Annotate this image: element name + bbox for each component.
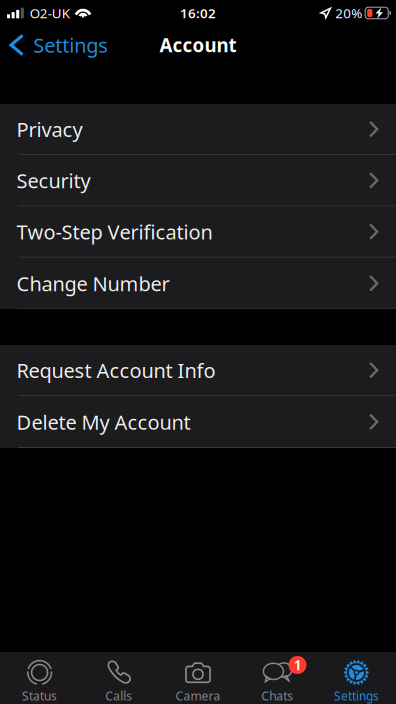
staticText: Two-Step Verification bbox=[16, 218, 212, 245]
button[interactable]: Calls bbox=[79, 652, 158, 704]
button[interactable]: Settings bbox=[317, 652, 396, 704]
button[interactable]: Camera bbox=[158, 652, 238, 704]
button[interactable]: Change Number bbox=[0, 258, 396, 309]
button[interactable]: Settings bbox=[0, 26, 116, 64]
staticText: Request Account Info bbox=[16, 357, 215, 383]
staticText: Change Number bbox=[16, 270, 169, 297]
button[interactable]: Two-Step Verification bbox=[0, 206, 396, 258]
staticText: Chats bbox=[261, 688, 293, 704]
staticText: Camera bbox=[175, 688, 220, 704]
staticText: Account bbox=[159, 33, 236, 57]
staticText: O2-UK bbox=[30, 4, 70, 22]
staticText: Status bbox=[22, 688, 57, 704]
staticText: Calls bbox=[105, 688, 132, 704]
staticText: Delete My Account bbox=[16, 409, 190, 435]
staticText: Settings bbox=[33, 32, 108, 58]
button[interactable]: Request Account Info bbox=[0, 345, 396, 396]
staticText: 1 bbox=[293, 655, 301, 674]
button[interactable]: Delete My Account bbox=[0, 396, 396, 447]
button[interactable]: Privacy bbox=[0, 104, 396, 155]
button[interactable]: Security bbox=[0, 155, 396, 206]
staticText: Settings bbox=[334, 688, 379, 704]
staticText: Privacy bbox=[16, 116, 82, 142]
button[interactable]: Status bbox=[0, 652, 79, 704]
button[interactable]: 1 bbox=[238, 652, 317, 704]
staticText: Security bbox=[16, 167, 90, 194]
staticText: 20% bbox=[335, 4, 362, 22]
staticText: 16:02 bbox=[180, 4, 216, 22]
